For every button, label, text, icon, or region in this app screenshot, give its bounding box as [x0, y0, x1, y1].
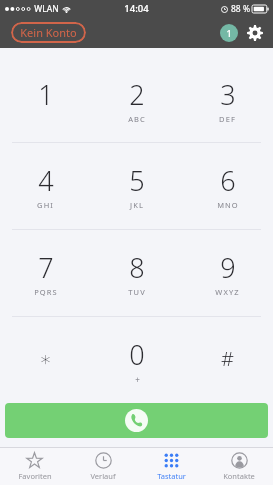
staticText: 7	[38, 249, 54, 286]
button[interactable]: 3	[182, 57, 273, 142]
button[interactable]: 2	[91, 57, 182, 142]
staticText: Verlauf	[90, 471, 116, 481]
staticText: 14:04	[124, 2, 149, 15]
button[interactable]: 6	[182, 143, 273, 229]
staticText: WLAN	[34, 3, 59, 15]
staticText: Kontakte	[223, 471, 255, 481]
button[interactable]: Settings	[245, 23, 265, 43]
staticText: 3	[220, 76, 236, 113]
staticText: 0	[129, 336, 145, 373]
staticText: WXYZ	[215, 287, 240, 297]
staticText: 1	[38, 76, 54, 113]
button[interactable]: Favoriten	[0, 448, 69, 485]
staticText: JKL	[130, 200, 144, 210]
button[interactable]: 1 notification	[220, 24, 238, 42]
staticText: ABC	[128, 114, 146, 124]
button[interactable]: Call	[5, 403, 268, 438]
button[interactable]: 4	[0, 143, 91, 229]
staticText: MNO	[217, 200, 239, 210]
staticText: +	[135, 374, 140, 385]
button[interactable]: Kontakte	[205, 448, 273, 485]
staticText: 6	[220, 162, 236, 199]
staticText: GHI	[37, 200, 54, 210]
staticText: 9	[220, 249, 236, 286]
staticText: Favoriten	[18, 471, 52, 481]
staticText: DEF	[219, 114, 236, 124]
button[interactable]: 0	[91, 317, 182, 403]
button[interactable]: 9	[182, 230, 273, 316]
staticText: Kein Konto	[20, 25, 77, 40]
staticText: #	[221, 345, 234, 372]
button[interactable]: #	[182, 317, 273, 403]
staticText: PQRS	[34, 287, 58, 297]
staticText: 88 %	[231, 3, 250, 15]
staticText: 5	[129, 162, 145, 199]
button[interactable]: ∗	[0, 317, 91, 403]
staticText: Tastatur	[157, 471, 186, 481]
staticText: 8	[129, 249, 145, 286]
button[interactable]: 1	[0, 57, 91, 142]
staticText: 2	[129, 76, 145, 113]
staticText: TUV	[128, 287, 146, 297]
button[interactable]: Kein Konto	[11, 22, 86, 43]
staticText: ∗	[39, 347, 52, 370]
button[interactable]: 5	[91, 143, 182, 229]
button[interactable]: 8	[91, 230, 182, 316]
button[interactable]: Tastatur	[137, 448, 205, 485]
button[interactable]: 7	[0, 230, 91, 316]
button[interactable]: Verlauf	[69, 448, 137, 485]
staticText: 4	[38, 162, 54, 199]
staticText: 1	[226, 27, 232, 39]
